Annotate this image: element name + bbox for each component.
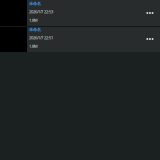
button[interactable]: 未命名 <box>0 0 160 26</box>
button[interactable]: More <box>143 32 156 46</box>
staticText: 未命名 <box>29 27 41 32</box>
staticText: 2026/1/7 22:53 <box>29 9 53 14</box>
button[interactable]: 未命名 <box>0 26 160 52</box>
staticText: 1.8M <box>29 43 38 49</box>
staticText: 2026/1/7 22:51 <box>29 35 53 40</box>
button[interactable]: More <box>143 6 156 20</box>
staticText: 1.8M <box>29 17 38 23</box>
staticText: 未命名 <box>29 1 41 6</box>
